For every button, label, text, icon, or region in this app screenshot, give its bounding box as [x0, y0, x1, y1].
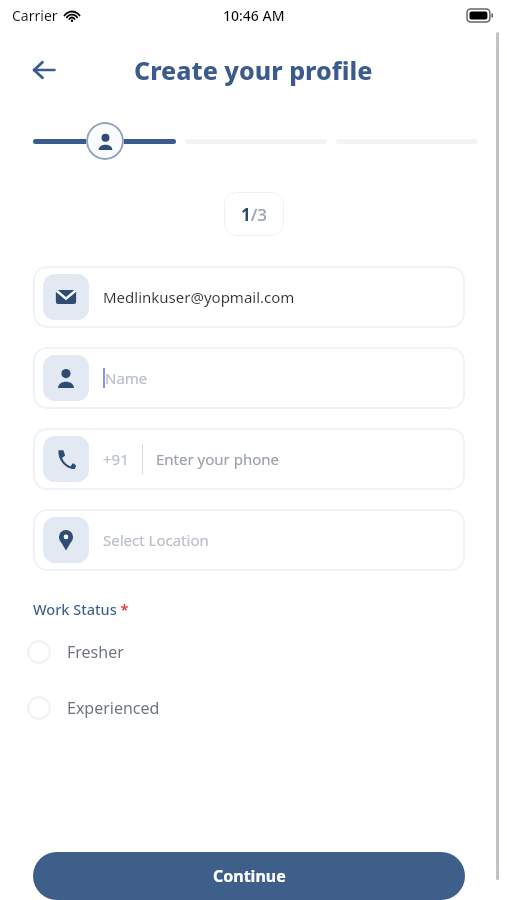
button[interactable]: Medlinkuser@yopmail.com: [33, 266, 465, 328]
staticText: Select Location: [103, 530, 209, 550]
button[interactable]: Back: [22, 48, 66, 92]
staticText: Experienced: [67, 697, 160, 719]
staticText: 10:46 AM: [223, 6, 285, 25]
button[interactable]: Fresher: [27, 631, 465, 673]
staticText: Carrier: [12, 6, 58, 25]
button[interactable]: Name: [33, 347, 465, 409]
staticText: 1/3: [241, 203, 267, 226]
button[interactable]: +91: [33, 428, 465, 490]
staticText: Fresher: [67, 641, 124, 663]
staticText: Create your profile: [134, 53, 373, 87]
button[interactable]: Select Location: [33, 509, 465, 571]
staticText: Work Status *: [33, 599, 129, 619]
button[interactable]: Continue: [33, 852, 465, 900]
button[interactable]: Experienced: [27, 687, 465, 729]
staticText: +91: [103, 449, 129, 469]
staticText: Medlinkuser@yopmail.com: [103, 287, 295, 307]
staticText: Name: [105, 368, 148, 388]
staticText: Enter your phone: [156, 449, 279, 469]
staticText: Continue: [213, 865, 286, 887]
